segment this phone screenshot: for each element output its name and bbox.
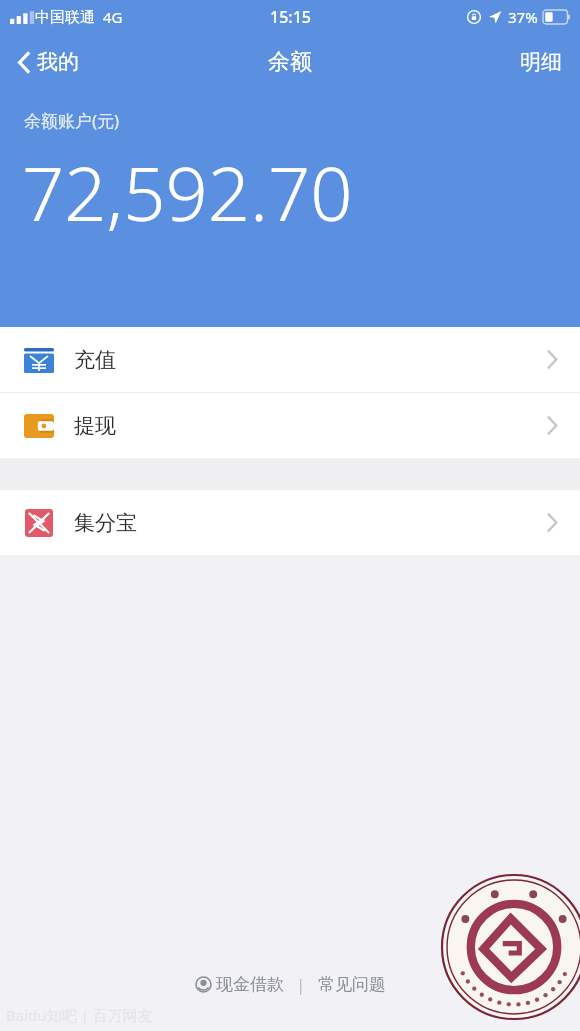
staticText: 余额账户(元)	[24, 109, 120, 132]
staticText: 中国联通	[35, 8, 95, 27]
staticText: |	[288, 974, 314, 996]
staticText: 4G	[103, 7, 123, 27]
staticText: 常见问题	[318, 974, 386, 995]
button[interactable]: 现金借款	[191, 970, 288, 999]
button[interactable]: 提现	[0, 393, 580, 458]
staticText: 现金借款	[216, 974, 284, 995]
staticText: Baidu知吧 | 百万网友	[6, 1005, 153, 1025]
staticText: 我的	[37, 49, 79, 75]
staticText: 72,592.70	[22, 142, 353, 243]
staticText: 充值	[74, 347, 116, 373]
button[interactable]: 明细	[506, 41, 580, 83]
button[interactable]: 集分宝	[0, 490, 580, 555]
staticText: 37%	[508, 7, 538, 27]
staticText: 15:15	[270, 6, 311, 28]
staticText: 余额	[268, 48, 312, 76]
button[interactable]: 我的	[0, 41, 93, 83]
staticText: 集分宝	[74, 510, 137, 536]
staticText: 明细	[520, 49, 562, 75]
button[interactable]: 充值	[0, 327, 580, 392]
button[interactable]: 常见问题	[314, 970, 390, 999]
staticText: 提现	[74, 413, 116, 439]
